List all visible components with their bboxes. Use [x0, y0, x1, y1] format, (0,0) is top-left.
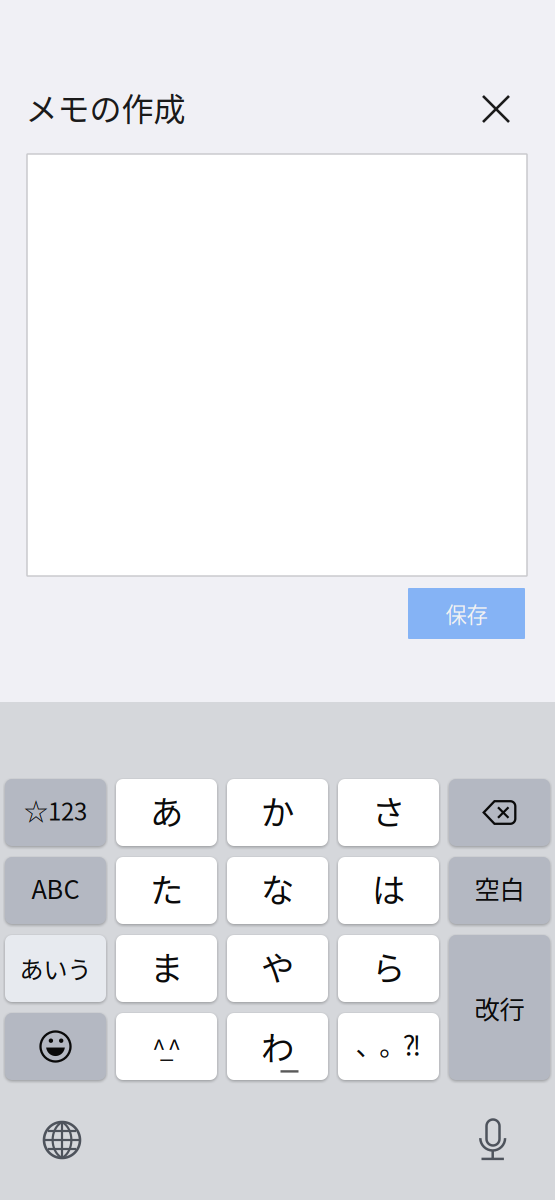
button[interactable]: ^_^ [116, 1013, 217, 1080]
button[interactable]: 音声入力 [465, 1112, 521, 1168]
button[interactable]: ABC [5, 857, 106, 924]
staticText: 保存 [445, 598, 487, 629]
staticText: メモの作成 [25, 84, 185, 130]
staticText: た [150, 864, 183, 912]
staticText: ABC [31, 870, 79, 906]
staticText: さ [372, 786, 405, 834]
staticText: は [372, 864, 405, 912]
button[interactable]: あ [116, 779, 217, 846]
staticText: な [261, 864, 294, 912]
button[interactable]: わ [227, 1013, 328, 1080]
staticText: 、。?! [356, 1025, 421, 1063]
button[interactable]: ら [338, 935, 439, 1002]
staticText: や [261, 942, 294, 990]
button[interactable]: 絵文字 [5, 1013, 106, 1080]
staticText: ら [372, 942, 405, 990]
button[interactable]: 削除 [449, 779, 550, 846]
staticText: ま [150, 942, 183, 990]
staticText: あいう [19, 951, 91, 985]
button[interactable]: 保存 [408, 588, 525, 639]
staticText: ^_^ [152, 1030, 181, 1064]
button[interactable]: 閉じる [472, 85, 520, 133]
staticText: か [261, 786, 294, 834]
button[interactable]: や [227, 935, 328, 1002]
button[interactable]: さ [338, 779, 439, 846]
button[interactable]: か [227, 779, 328, 846]
button[interactable]: 空白 [449, 857, 550, 924]
staticText: ☆123 [24, 793, 87, 827]
button[interactable]: ま [116, 935, 217, 1002]
button[interactable]: あいう [5, 935, 106, 1002]
staticText: 空白 [474, 870, 524, 906]
button[interactable]: ☆123 [5, 779, 106, 846]
button[interactable]: た [116, 857, 217, 924]
button[interactable]: な [227, 857, 328, 924]
staticText: 改行 [474, 990, 524, 1026]
button[interactable]: は [338, 857, 439, 924]
staticText: あ [150, 786, 183, 834]
staticText: わ [261, 1022, 294, 1070]
button[interactable]: 、。?! [338, 1013, 439, 1080]
button[interactable]: 改行 [449, 935, 550, 1080]
button[interactable]: 次のキーボード [34, 1112, 90, 1168]
